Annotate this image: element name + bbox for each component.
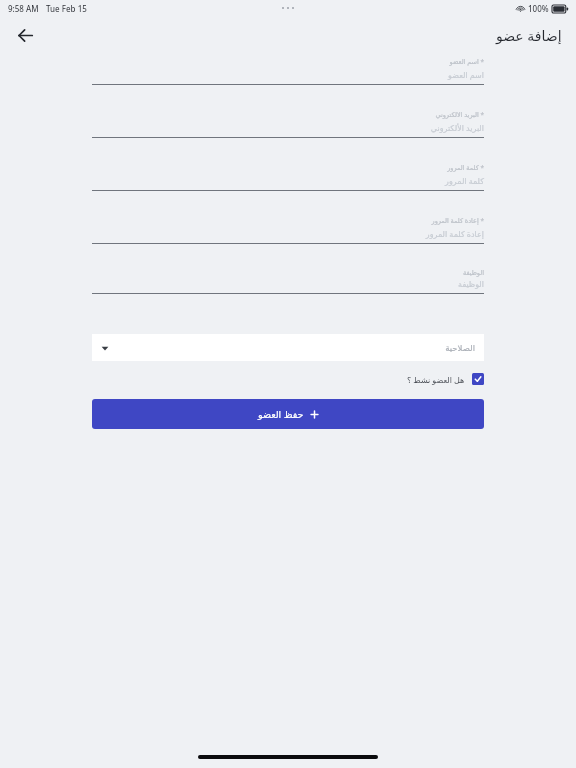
staticText: إعادة كلمة المرور * [92,216,484,225]
staticText: إعادة كلمة المرور [92,228,484,239]
staticText: الوظيفة [92,269,484,277]
staticText: كلمة المرور [92,175,484,186]
staticText: هل العضو نشط ؟ [407,374,465,385]
staticText: الصلاحية [109,343,475,353]
button[interactable]: البريد الالكتروني * [92,110,484,163]
button[interactable]: الوظيفة [92,269,484,319]
staticText: كلمة المرور * [92,163,484,172]
button[interactable]: Back [8,18,42,52]
staticText: Tue Feb 15 [46,3,87,14]
button[interactable]: هل العضو نشط ؟ [92,373,484,385]
staticText: إضافة عضو [496,26,562,45]
button[interactable]: الصلاحية [92,334,484,361]
staticText: اسم العضو [92,69,484,80]
staticText: حفظ العضو [258,408,304,421]
button[interactable]: حفظ العضو [92,399,484,429]
staticText: اسم العضو * [92,57,484,66]
staticText: البريد الألكتروني [92,122,484,133]
staticText: البريد الالكتروني * [92,110,484,119]
staticText: 100% [528,3,549,14]
button[interactable]: كلمة المرور * [92,163,484,216]
button[interactable]: إعادة كلمة المرور * [92,216,484,269]
staticText: 9:58 AM [8,3,39,14]
button[interactable]: اسم العضو * [92,57,484,110]
staticText: الوظيفة [92,280,484,289]
